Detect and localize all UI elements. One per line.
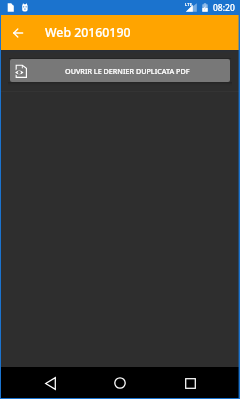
button[interactable]: Back [30, 367, 70, 399]
staticText: OUVRIR LE DERNIER DUPLICATA PDF [65, 66, 190, 76]
button[interactable]: OUVRIR LE DERNIER DUPLICATA PDF [10, 59, 230, 82]
button[interactable]: Back [0, 15, 36, 50]
staticText: 08:20 [213, 2, 235, 14]
button[interactable]: Recent apps [170, 367, 210, 399]
button[interactable]: Home [100, 367, 140, 399]
staticText: Web 20160190 [45, 24, 131, 41]
staticText: LTE [185, 2, 192, 7]
